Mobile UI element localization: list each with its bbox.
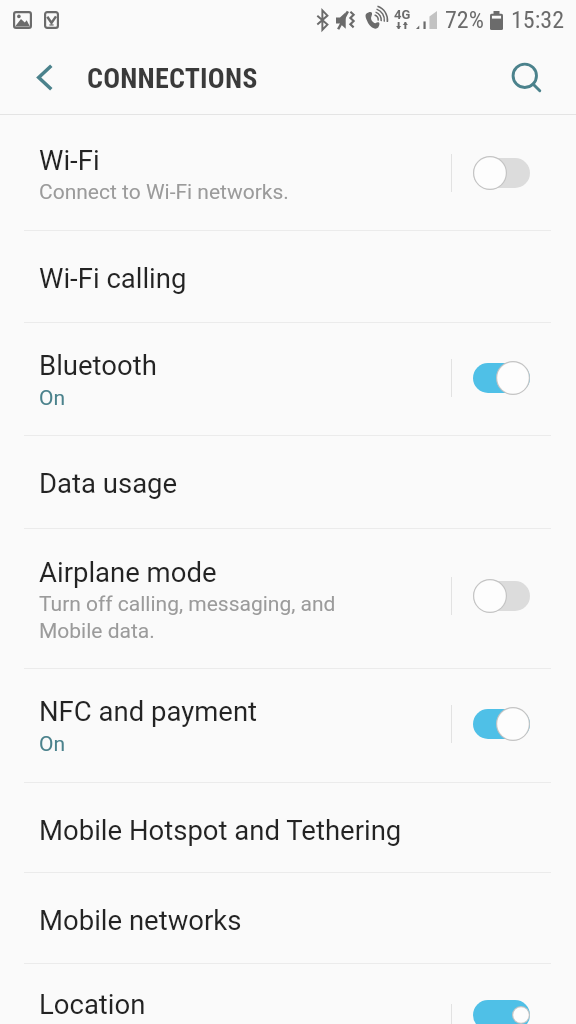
staticText: Bluetooth xyxy=(39,350,157,382)
staticText: 72% xyxy=(445,6,484,34)
button[interactable]: Data usage xyxy=(0,436,576,528)
button[interactable]: Back xyxy=(16,48,74,106)
staticText: Mobile networks xyxy=(39,905,242,937)
staticText: Location xyxy=(39,989,146,1021)
staticText: On xyxy=(39,732,66,756)
button[interactable]: Search xyxy=(503,54,553,104)
button[interactable]: NFC and payment switch xyxy=(449,669,576,782)
staticText: On xyxy=(39,386,66,410)
button[interactable]: Airplane mode switch xyxy=(449,529,576,668)
button[interactable]: Bluetooth xyxy=(0,323,576,435)
staticText: Mobile Hotspot and Tethering xyxy=(39,815,402,847)
button[interactable]: Airplane mode xyxy=(0,529,576,668)
button[interactable]: Wi-Fi xyxy=(0,115,576,230)
button[interactable]: Mobile networks xyxy=(0,873,576,963)
button[interactable]: Wi-Fi calling xyxy=(0,231,576,322)
button[interactable]: Wi-Fi switch xyxy=(449,115,576,230)
staticText: Wi-Fi calling xyxy=(39,263,187,295)
staticText: NFC and payment xyxy=(39,696,258,728)
button[interactable]: Location switch xyxy=(449,964,576,1024)
staticText: Turn off calling, messaging, and Mobile … xyxy=(39,590,336,644)
button[interactable]: Location xyxy=(0,964,576,1024)
button[interactable]: Bluetooth switch xyxy=(449,323,576,435)
staticText: Airplane mode xyxy=(39,557,217,589)
staticText: Data usage xyxy=(39,468,178,500)
staticText: 15:32 xyxy=(511,6,564,34)
button[interactable]: NFC and payment xyxy=(0,669,576,782)
staticText: 4G xyxy=(394,7,410,22)
staticText: Wi-Fi xyxy=(39,145,100,177)
staticText: Connect to Wi-Fi networks. xyxy=(39,178,289,205)
staticText: CONNECTIONS xyxy=(87,62,258,95)
button[interactable]: Mobile Hotspot and Tethering xyxy=(0,783,576,872)
